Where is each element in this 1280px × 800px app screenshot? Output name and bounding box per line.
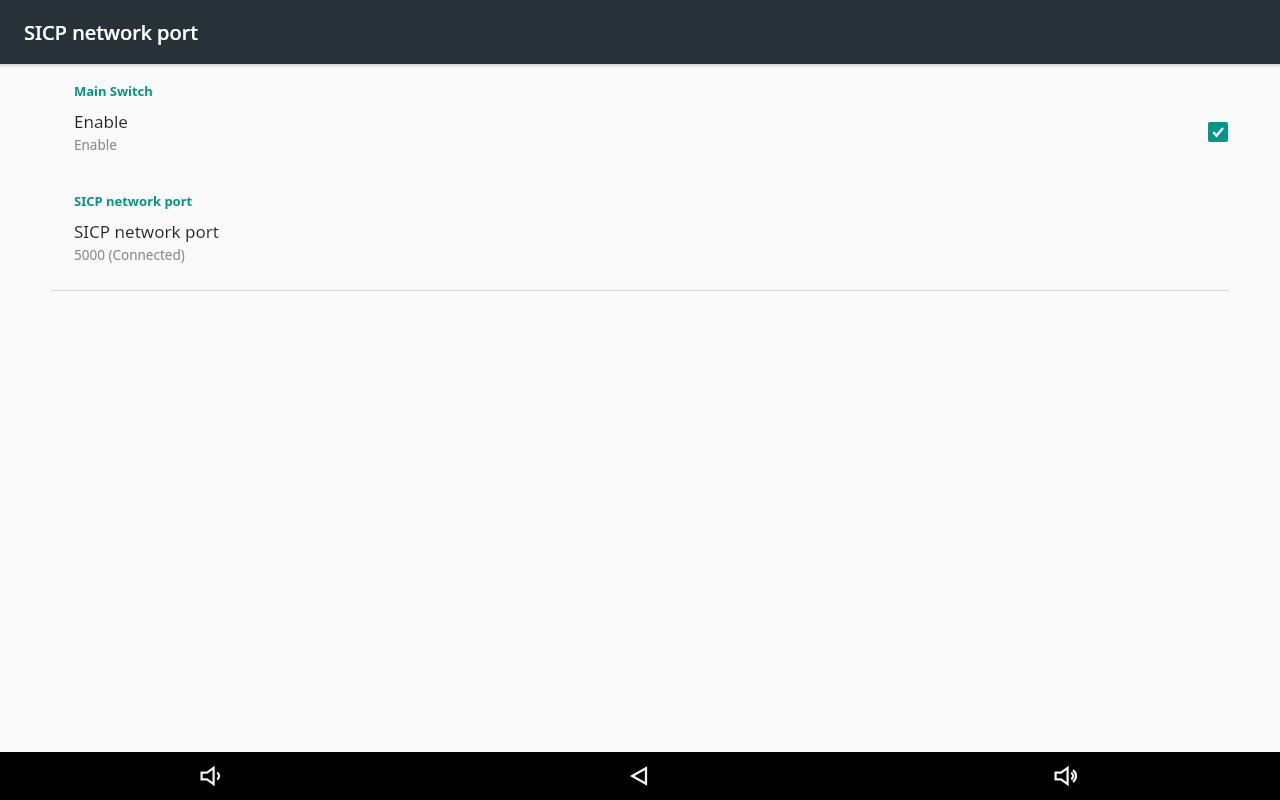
button[interactable]: Volume down — [0, 752, 426, 800]
button[interactable]: SICP network port — [0, 210, 1280, 276]
staticText: Main Switch — [74, 82, 153, 100]
staticText: SICP network port — [24, 19, 198, 46]
button[interactable]: Enable — [0, 100, 1280, 166]
button[interactable]: Volume up — [853, 752, 1280, 800]
staticText: SICP network port — [74, 192, 193, 210]
button[interactable]: Back — [426, 752, 853, 800]
staticText: SICP network port — [74, 220, 219, 243]
staticText: Enable — [74, 136, 117, 154]
button[interactable]: Enable checkbox, checked — [1208, 122, 1228, 142]
staticText: Enable — [74, 110, 128, 133]
staticText: 5000 (Connected) — [74, 246, 185, 264]
